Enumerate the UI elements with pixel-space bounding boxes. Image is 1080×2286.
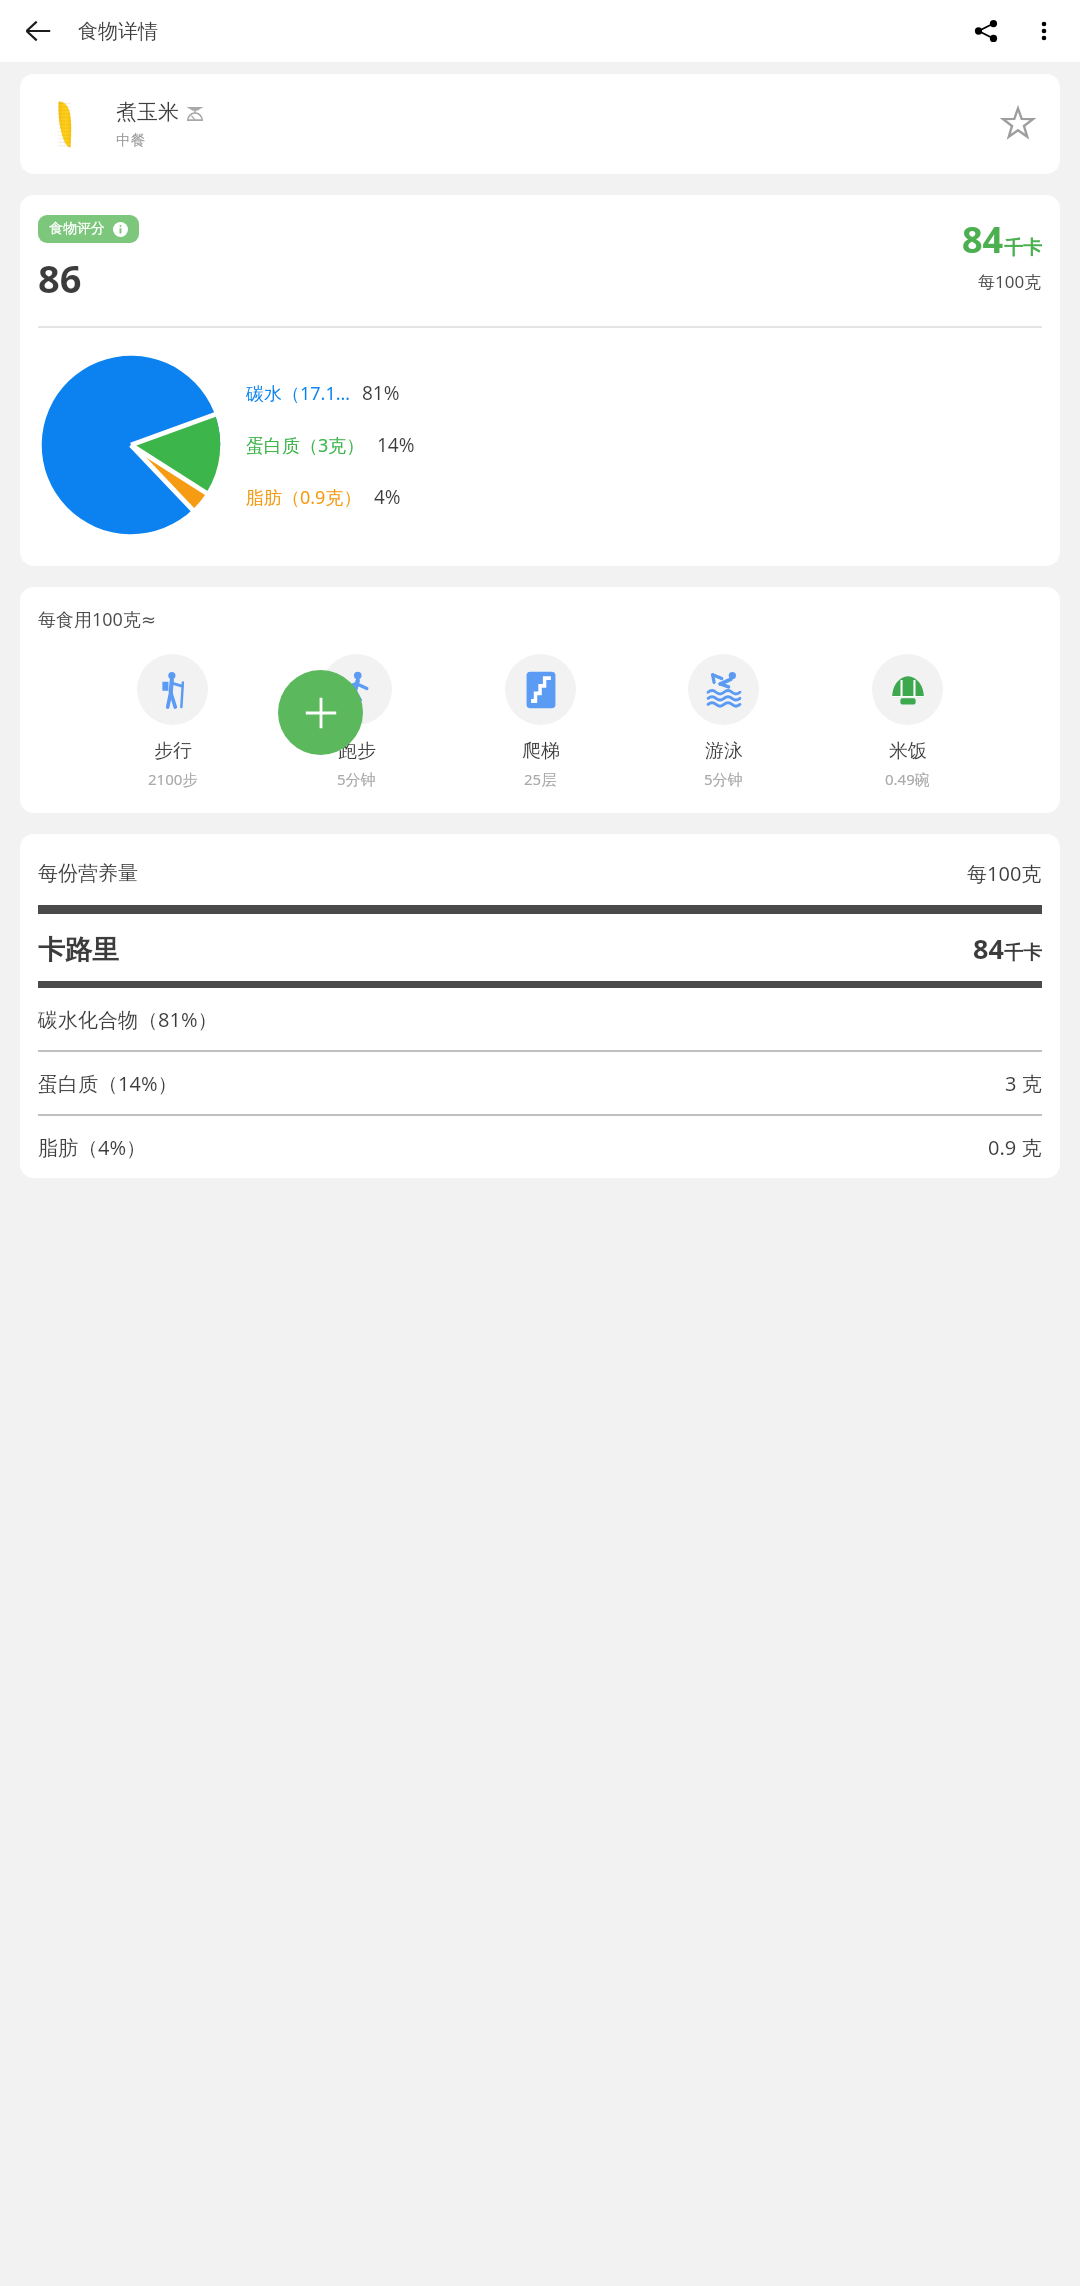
staticText: 蛋白质（14%） [38,1070,178,1097]
button[interactable]: 步行 [133,654,212,789]
staticText: 脂肪（4%） [38,1134,147,1161]
button[interactable]: 米饭 [868,654,947,789]
staticText: 碳水化合物（81%） [38,1006,218,1033]
staticText: 86 [38,252,82,304]
staticText: 每食用100克≈ [38,607,156,632]
staticText: 千卡 [1004,236,1042,260]
button[interactable]: 食物评分 [38,215,139,243]
staticText: 煮玉米 [116,99,179,125]
button[interactable]: 游泳 [684,654,763,789]
staticText: 米饭 [889,739,927,763]
staticText: 中餐 [116,131,145,149]
staticText: 蛋白质（3克） [246,433,365,458]
staticText: 4% [374,484,401,510]
staticText: 千卡 [1004,941,1042,965]
staticText: 爬梯 [522,739,560,763]
staticText: 食物评分 [49,220,105,238]
staticText: 3 克 [1005,1070,1042,1097]
staticText: 81% [362,380,400,406]
staticText: 84 [962,215,1004,264]
button[interactable]: Back [14,7,62,55]
staticText: 2100步 [148,769,198,789]
button[interactable]: Favorite [994,100,1042,148]
staticText: 卡路里 [38,933,119,967]
staticText: 5分钟 [337,769,376,789]
staticText: 每100克 [967,860,1042,887]
staticText: 步行 [154,739,192,763]
button[interactable]: 煮玉米 [20,74,1060,174]
button[interactable]: 跑步 [317,654,396,789]
staticText: 每份营养量 [38,861,138,886]
staticText: 每100克 [978,270,1042,293]
staticText: 0.49碗 [885,769,930,789]
button[interactable]: 爬梯 [501,654,580,789]
button[interactable]: Share [962,7,1010,55]
staticText: 5分钟 [704,769,743,789]
staticText: 脂肪（0.9克） [246,485,362,510]
staticText: 0.9 克 [988,1134,1042,1161]
staticText: 食物详情 [78,19,158,44]
staticText: 25层 [524,769,557,789]
staticText: 碳水（17.1… [246,381,350,406]
staticText: 游泳 [705,739,743,763]
button[interactable]: More options [1020,7,1068,55]
staticText: 14% [377,432,415,458]
staticText: 跑步 [338,739,376,763]
button[interactable]: Add food [278,670,363,755]
staticText: 84 [973,930,1004,967]
